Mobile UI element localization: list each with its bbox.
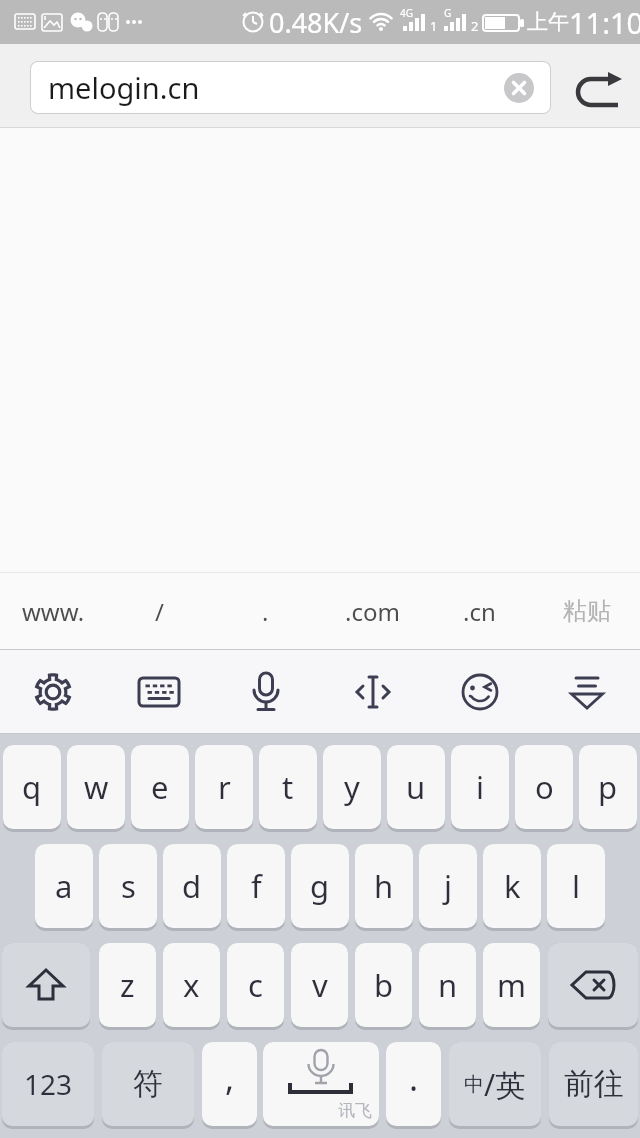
staticText: d [182, 865, 202, 907]
staticText: j [444, 865, 452, 907]
button[interactable]: j [419, 844, 477, 928]
button[interactable]: f [227, 844, 285, 928]
button[interactable] [106, 650, 212, 733]
button[interactable]: www. [0, 573, 106, 649]
staticText: /英 [484, 1064, 526, 1105]
button[interactable] [426, 650, 533, 733]
button[interactable]: k [483, 844, 541, 928]
staticText: a [55, 865, 73, 907]
button[interactable]: m [483, 943, 540, 1027]
button[interactable]: g [291, 844, 349, 928]
staticText: r [218, 766, 231, 808]
staticText: u [406, 766, 426, 808]
button[interactable]: p [579, 745, 637, 829]
staticText: .cn [463, 595, 496, 628]
staticText: m [497, 964, 526, 1006]
staticText: v [312, 964, 328, 1006]
staticText: www. [22, 595, 85, 628]
staticText: q [22, 766, 42, 808]
button[interactable] [2, 943, 90, 1027]
staticText: g [310, 865, 330, 907]
button[interactable] [212, 650, 319, 733]
button[interactable]: melogin.cn [31, 62, 550, 113]
button[interactable]: 123 [2, 1042, 94, 1126]
button[interactable]: q [3, 745, 61, 829]
button[interactable]: t [259, 745, 317, 829]
button[interactable]: .cn [426, 573, 533, 649]
staticText: t [282, 766, 294, 808]
button[interactable]: w [67, 745, 125, 829]
staticText: 中 [464, 1072, 484, 1097]
staticText: G [444, 6, 452, 20]
staticText: e [151, 766, 169, 808]
staticText: . [409, 1055, 419, 1101]
button[interactable] [570, 72, 626, 114]
button[interactable]: l [547, 844, 605, 928]
staticText: z [120, 964, 135, 1006]
button[interactable]: v [291, 943, 348, 1027]
staticText: 粘贴 [563, 596, 611, 626]
button[interactable]: . [386, 1042, 441, 1126]
staticText: 前往 [564, 1065, 624, 1103]
staticText: p [598, 766, 618, 808]
staticText: s [121, 865, 136, 907]
button[interactable]: u [387, 745, 445, 829]
staticText: , [225, 1055, 235, 1101]
staticText: 1 [430, 17, 438, 35]
staticText: c [248, 964, 263, 1006]
button[interactable]: , [202, 1042, 257, 1126]
staticText: b [374, 964, 394, 1006]
button[interactable]: c [227, 943, 284, 1027]
staticText: .com [345, 595, 400, 628]
button[interactable]: b [355, 943, 412, 1027]
button[interactable]: y [323, 745, 381, 829]
staticText: 11:10 [569, 3, 640, 42]
staticText: i [476, 766, 484, 808]
button[interactable]: / [106, 573, 212, 649]
button[interactable]: d [163, 844, 221, 928]
staticText: 123 [24, 1065, 73, 1103]
button[interactable]: h [355, 844, 413, 928]
button[interactable]: e [131, 745, 189, 829]
button[interactable]: s [99, 844, 157, 928]
button[interactable]: n [419, 943, 476, 1027]
button[interactable]: 前往 [549, 1042, 638, 1126]
button[interactable]: x [163, 943, 220, 1027]
button[interactable] [319, 650, 426, 733]
staticText: 讯飞 [338, 1100, 372, 1121]
staticText: k [504, 865, 521, 907]
button[interactable] [533, 650, 640, 733]
button[interactable] [504, 73, 534, 103]
button[interactable]: r [195, 745, 253, 829]
button[interactable] [548, 943, 638, 1027]
button[interactable]: 讯飞 [263, 1042, 379, 1126]
button[interactable]: 粘贴 [533, 573, 640, 649]
button[interactable]: .com [319, 573, 426, 649]
staticText: 2 [471, 17, 479, 35]
staticText: 0.48K/s [269, 4, 363, 41]
button[interactable] [0, 650, 106, 733]
staticText: 4G [400, 6, 413, 20]
staticText: y [344, 766, 360, 808]
button[interactable]: z [99, 943, 156, 1027]
button[interactable]: a [35, 844, 93, 928]
staticText: o [535, 766, 554, 808]
staticText: melogin.cn [48, 68, 200, 107]
staticText: x [183, 964, 200, 1006]
button[interactable]: . [212, 573, 319, 649]
staticText: 上午 [527, 9, 569, 35]
staticText: f [251, 865, 262, 907]
staticText: / [155, 595, 164, 628]
staticText: n [438, 964, 458, 1006]
staticText: . [262, 595, 269, 628]
staticText: w [84, 766, 109, 808]
button[interactable]: i [451, 745, 509, 829]
button[interactable]: 中 [449, 1042, 541, 1126]
staticText: 符 [133, 1065, 163, 1103]
button[interactable]: o [515, 745, 573, 829]
staticText: h [374, 865, 394, 907]
button[interactable]: 符 [102, 1042, 194, 1126]
staticText: l [572, 865, 580, 907]
